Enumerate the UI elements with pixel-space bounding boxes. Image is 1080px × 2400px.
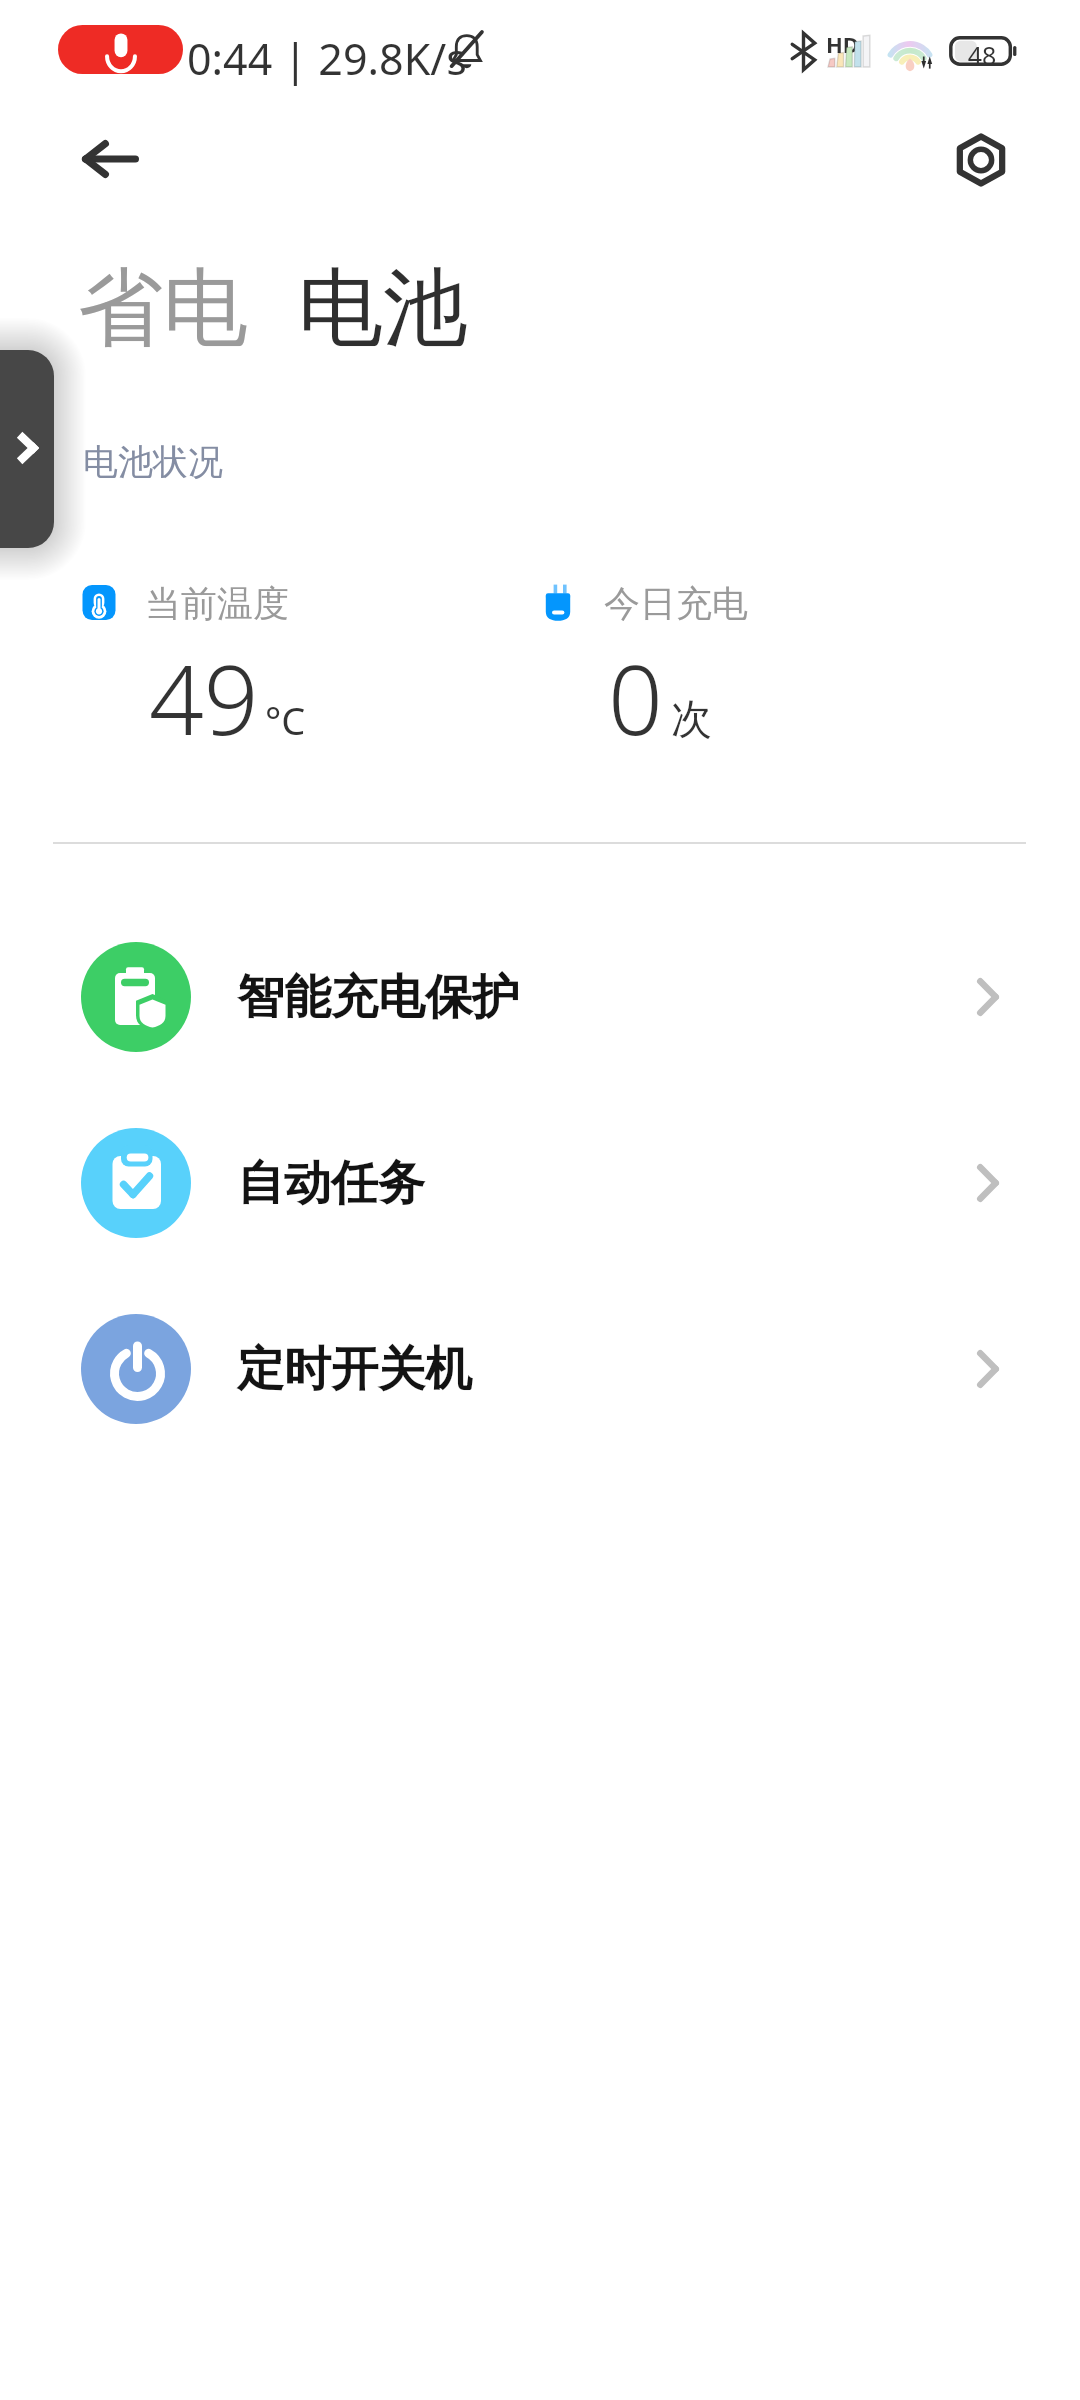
staticText: 48 bbox=[955, 38, 1009, 72]
button[interactable]: 省电 bbox=[78, 255, 248, 362]
staticText: 今日充电 bbox=[604, 581, 748, 626]
staticText: 当前温度 bbox=[145, 581, 289, 626]
button[interactable]: 自动任务 bbox=[0, 1090, 1080, 1276]
button[interactable]: Open side panel bbox=[0, 350, 54, 548]
staticText: 次 bbox=[671, 694, 712, 746]
staticText: 自动任务 bbox=[237, 1154, 425, 1213]
button[interactable]: Back bbox=[66, 115, 154, 203]
button[interactable]: 电池 bbox=[298, 255, 468, 362]
staticText: HD bbox=[826, 29, 859, 59]
staticText: 定时开关机 bbox=[237, 1340, 472, 1399]
staticText: 49 bbox=[149, 632, 259, 763]
staticText: 电池状况 bbox=[83, 440, 223, 484]
button[interactable]: Settings bbox=[937, 116, 1025, 204]
button[interactable]: 定时开关机 bbox=[0, 1276, 1080, 1462]
staticText: 电池 bbox=[298, 255, 468, 362]
staticText: 智能充电保护 bbox=[237, 968, 519, 1027]
staticText: 省电 bbox=[78, 255, 248, 362]
staticText: °C bbox=[265, 694, 306, 746]
button[interactable]: 智能充电保护 bbox=[0, 904, 1080, 1090]
staticText: 0 bbox=[608, 632, 663, 763]
staticText: 0:44 | 29.8K/s bbox=[187, 29, 467, 88]
